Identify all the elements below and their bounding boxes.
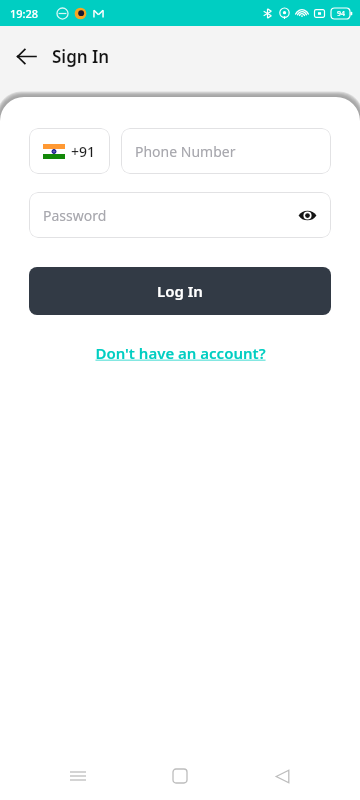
button[interactable]: Don't have an account? bbox=[91, 341, 270, 365]
staticText: 19:28 bbox=[10, 6, 39, 21]
button[interactable]: Back bbox=[8, 38, 44, 74]
staticText: +91 bbox=[71, 142, 96, 161]
button[interactable]: Show password bbox=[291, 199, 323, 231]
staticText: Don't have an account? bbox=[95, 343, 266, 363]
staticText: Password bbox=[43, 206, 107, 225]
button[interactable]: Home bbox=[156, 752, 204, 800]
button[interactable]: Phone Number bbox=[121, 128, 331, 174]
staticText: Log In bbox=[157, 281, 203, 301]
staticText: Sign In bbox=[52, 45, 110, 68]
button[interactable]: Back bbox=[258, 752, 306, 800]
button[interactable]: Recents bbox=[54, 752, 102, 800]
staticText: Phone Number bbox=[135, 142, 236, 161]
button[interactable]: Password bbox=[29, 192, 331, 238]
staticText: 94 bbox=[337, 9, 346, 19]
button[interactable]: +91 bbox=[29, 128, 110, 174]
button[interactable]: Log In bbox=[29, 267, 331, 315]
